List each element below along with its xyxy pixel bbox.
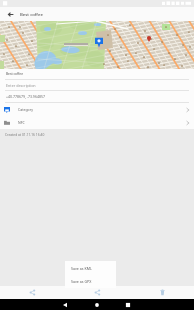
staticText: Enter description (6, 83, 36, 88)
button[interactable]: Best coffee (0, 69, 194, 79)
button[interactable]: Save as KML (65, 261, 116, 275)
staticText: Created at 01.11.16 16:40 (5, 132, 45, 136)
button[interactable]: Back (0, 7, 20, 21)
button[interactable]: Map (0, 21, 194, 69)
button[interactable]: +40.778679, -73.964857 (0, 91, 194, 102)
button[interactable]: Home (91, 299, 103, 310)
staticText: Best coffee (6, 72, 23, 76)
button[interactable]: Category (0, 103, 194, 116)
staticText: Save as GPX (71, 279, 92, 284)
button[interactable]: Back (60, 299, 72, 310)
button[interactable]: NFC (0, 116, 194, 129)
staticText: NFC (18, 120, 25, 125)
button[interactable]: Recents (122, 299, 134, 310)
staticText: +40.778679, -73.964857 (6, 94, 45, 99)
staticText: Best coffee (20, 11, 43, 17)
button[interactable]: Share (91, 286, 104, 299)
staticText: Category (18, 107, 33, 112)
button[interactable]: Save as GPX (65, 275, 116, 288)
button[interactable]: Enter description (0, 80, 194, 90)
button[interactable]: Delete (156, 286, 169, 299)
staticText: Save as KML (71, 266, 92, 271)
button[interactable]: Navigate (26, 286, 39, 299)
